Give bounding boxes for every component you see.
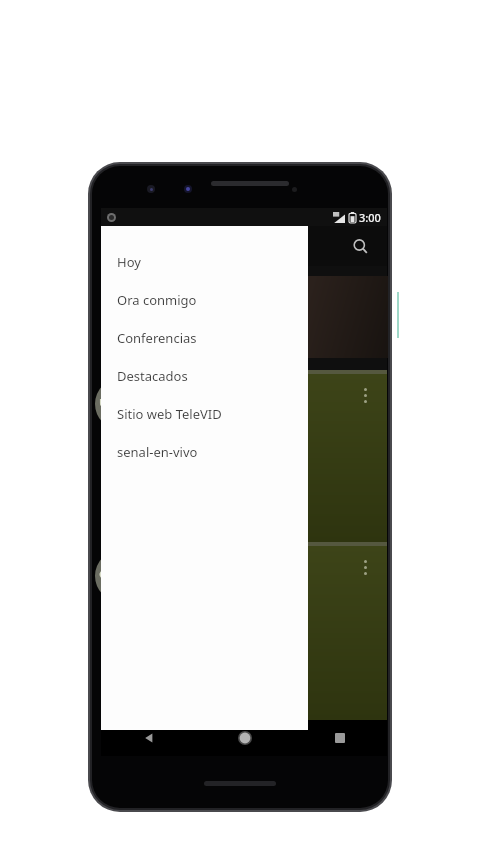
button[interactable]: Conferencias xyxy=(101,319,308,357)
staticText: I xyxy=(125,404,134,431)
staticText: V xyxy=(111,404,125,431)
button[interactable]: More options xyxy=(357,560,373,584)
button[interactable]: Home xyxy=(197,720,292,756)
staticText: uadal xyxy=(99,392,134,410)
button[interactable]: Ora conmigo xyxy=(101,281,308,319)
staticText: Conferencias xyxy=(117,329,197,347)
staticText: 3:00 xyxy=(359,210,381,225)
staticText: senal-en-vivo xyxy=(117,443,198,461)
button[interactable]: Hoy xyxy=(101,243,308,281)
button[interactable]: Search xyxy=(345,231,375,261)
staticText: Sitio web TeleVID xyxy=(117,405,222,423)
staticText: Ora conmigo xyxy=(117,291,197,309)
staticText: Destacados xyxy=(117,367,188,385)
button[interactable]: Destacados xyxy=(101,357,308,395)
button[interactable]: Sitio web TeleVID xyxy=(101,395,308,433)
staticText: ora Sa xyxy=(99,564,138,582)
staticText: GEN DE xyxy=(101,426,193,460)
button[interactable]: ora Sa xyxy=(101,546,387,720)
button[interactable]: uadal xyxy=(101,374,387,542)
button[interactable]: Recent apps xyxy=(292,720,387,756)
button[interactable]: More options xyxy=(357,388,373,412)
button[interactable]: senal-en-vivo xyxy=(101,433,308,471)
staticText: KI xyxy=(103,290,122,313)
staticText: D xyxy=(134,404,149,431)
staticText: Hoy xyxy=(117,253,141,271)
button[interactable]: Back xyxy=(101,720,197,756)
